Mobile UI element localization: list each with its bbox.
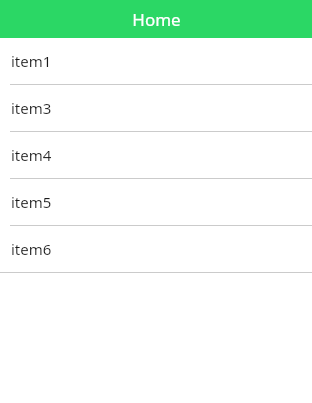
staticText: item6 <box>11 239 52 259</box>
button[interactable]: item4 <box>0 132 312 178</box>
button[interactable]: item1 <box>0 38 312 84</box>
button[interactable]: item3 <box>0 85 312 131</box>
staticText: item1 <box>11 51 52 71</box>
button[interactable]: item6 <box>0 226 312 272</box>
staticText: item3 <box>11 98 52 118</box>
staticText: Home <box>132 8 181 31</box>
staticText: item4 <box>11 145 52 165</box>
button[interactable]: item5 <box>0 179 312 225</box>
staticText: item5 <box>11 192 52 212</box>
